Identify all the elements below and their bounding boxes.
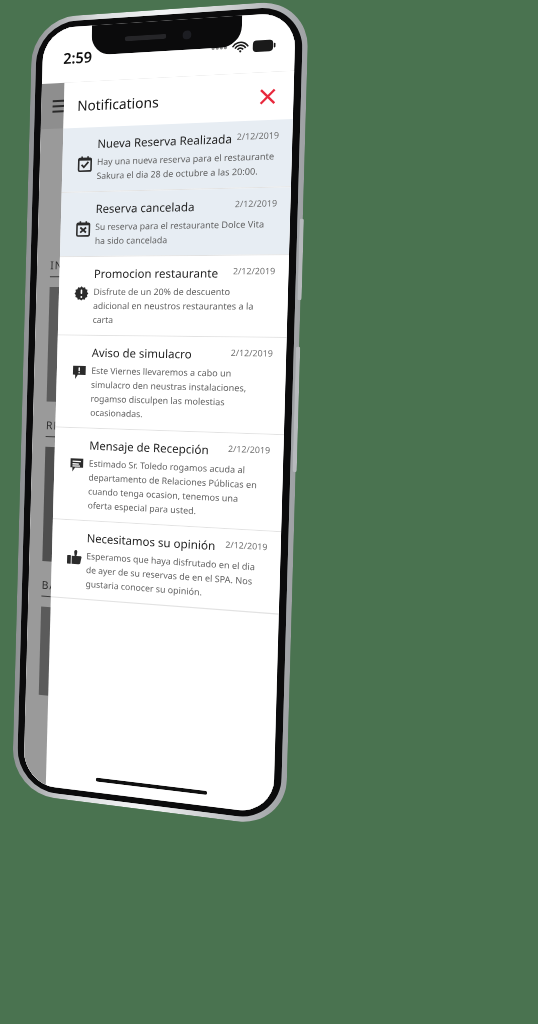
staticText: Estimado Sr. Toledo rogamos acuda al dep… — [88, 457, 266, 521]
staticText: Notifications — [77, 92, 160, 115]
staticText: Esperamos que haya disfrutado en el dia … — [85, 550, 263, 603]
button[interactable]: Reserva cancelada — [60, 187, 291, 256]
staticText: Mensaje de Recepción — [89, 438, 228, 459]
staticText: Este Viernes llevaremos a cabo un simula… — [90, 365, 269, 424]
button[interactable]: Close notifications — [251, 80, 283, 112]
staticText: 2/12/2019 — [233, 265, 276, 277]
button[interactable]: Nueva Reserva Realizada — [62, 119, 293, 192]
staticText: Su reserva para el restaurante Dolce Vit… — [95, 218, 273, 247]
button[interactable]: Promocion restaurante — [58, 255, 289, 337]
staticText: Necesitamos su opinión — [87, 530, 225, 555]
staticText: RESTAURANTES — [46, 417, 135, 435]
staticText: BARES — [41, 577, 79, 594]
staticText: Aviso de simulacro — [92, 345, 231, 363]
button[interactable]: Necesitamos su opinión — [51, 519, 281, 614]
staticText: 2/12/2019 — [237, 129, 280, 143]
staticText: Disfrute de un 20% de descuento adiciona… — [93, 286, 271, 327]
staticText: Nueva Reserva Realizada — [97, 131, 237, 152]
staticText: INFORMACIÓN — [50, 257, 136, 272]
staticText: 2/12/2019 — [228, 443, 271, 457]
staticText: Hay una nueva reserva para el restaurant… — [96, 150, 275, 182]
staticText: Promocion restaurante — [94, 265, 233, 282]
staticText: 2/12/2019 — [235, 197, 278, 210]
staticText: Reserva cancelada — [95, 198, 235, 217]
staticText: 2/12/2019 — [225, 538, 268, 553]
staticText: 2:59 — [63, 46, 92, 68]
staticText: 2/12/2019 — [231, 347, 274, 360]
button[interactable]: Aviso de simulacro — [55, 335, 287, 434]
button[interactable]: Mensaje de Recepción — [53, 427, 284, 531]
